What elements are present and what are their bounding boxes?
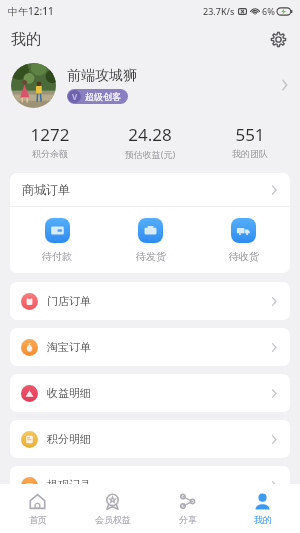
staticText: 积分余额 [0,148,100,159]
button[interactable]: 待发货 [104,207,197,273]
staticText: 我的 [254,514,272,525]
staticText: 待发货 [136,250,166,263]
button[interactable]: Settings [264,25,292,53]
staticText: 积分明细 [47,432,91,446]
staticText: 551 [200,123,300,146]
button[interactable]: 分享 [150,484,225,533]
button[interactable]: 淘宝订单 [10,328,290,366]
button[interactable]: 待收货 [197,207,290,273]
staticText: 6% [262,5,275,17]
staticText: 我的团队 [200,148,300,159]
staticText: 收益明细 [47,386,91,400]
staticText: 提现记录 [47,478,91,492]
button[interactable]: 1272 [0,123,100,159]
staticText: 会员权益 [95,514,131,525]
staticText: 商城订单 [22,182,70,197]
staticText: 23.7K/s [203,5,235,17]
button[interactable]: 我的 [225,484,300,533]
staticText: 超级创客 [85,91,121,102]
staticText: 首页 [29,514,47,525]
button[interactable]: 会员权益 [75,484,150,533]
staticText: 预估收益(元) [100,148,200,160]
button[interactable]: 商城订单 [10,173,290,206]
staticText: 前端攻城狮 [67,67,137,85]
button[interactable]: 收益明细 [10,374,290,412]
staticText: V [72,91,78,102]
staticText: 1272 [0,123,100,146]
button[interactable]: 提现记录 [10,466,290,504]
button[interactable]: 551 [200,123,300,159]
staticText: 中午12:11 [8,4,54,18]
button[interactable]: 门店订单 [10,282,290,320]
button[interactable]: 首页 [0,484,75,533]
staticText: 24.28 [100,123,200,146]
staticText: 分享 [179,514,197,525]
button[interactable]: 前端攻城狮 [0,56,300,114]
button[interactable]: 待付款 [10,207,104,273]
staticText: 我的 [11,30,41,49]
staticText: 待收货 [229,250,259,263]
button[interactable]: 24.28 [100,123,200,160]
button[interactable]: 积分明细 [10,420,290,458]
staticText: 待付款 [42,250,72,263]
staticText: 淘宝订单 [47,340,91,354]
staticText: 门店订单 [47,294,91,308]
